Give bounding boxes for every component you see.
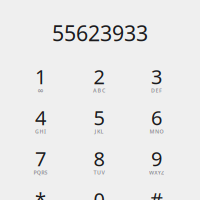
staticText: ∞ (37, 86, 44, 95)
staticText: 8 (93, 145, 104, 172)
staticText: GHI (35, 128, 46, 135)
button[interactable]: 7 (11, 142, 69, 183)
button[interactable]: 3 (127, 60, 185, 101)
staticText: 2 (93, 63, 104, 90)
staticText: # (150, 186, 163, 200)
staticText: JKL (95, 128, 103, 135)
staticText: PQRS (33, 169, 48, 176)
button[interactable]: 9 (127, 142, 185, 183)
staticText: 9 (151, 145, 162, 172)
staticText: 4 (35, 104, 46, 131)
staticText: 55623933 (52, 19, 148, 47)
button[interactable]: # (127, 183, 185, 200)
staticText: 6 (151, 104, 162, 131)
button[interactable]: 5 (70, 101, 128, 142)
staticText: 5 (93, 104, 104, 131)
staticText: * (35, 186, 46, 200)
staticText: DEF (151, 87, 162, 94)
staticText: 1 (35, 63, 46, 90)
staticText: 0 (93, 186, 104, 200)
staticText: WXYZ (149, 169, 164, 176)
staticText: TUV (94, 169, 104, 176)
staticText: MNO (150, 128, 163, 135)
button[interactable]: 1 (11, 60, 69, 101)
button[interactable]: 6 (127, 101, 185, 142)
button[interactable]: 4 (11, 101, 69, 142)
button[interactable]: 8 (70, 142, 128, 183)
staticText: 3 (151, 63, 162, 90)
staticText: 7 (35, 145, 46, 172)
button[interactable]: 0 (70, 183, 128, 200)
button[interactable]: 2 (70, 60, 128, 101)
button[interactable]: * (11, 183, 69, 200)
staticText: ABC (93, 87, 105, 94)
